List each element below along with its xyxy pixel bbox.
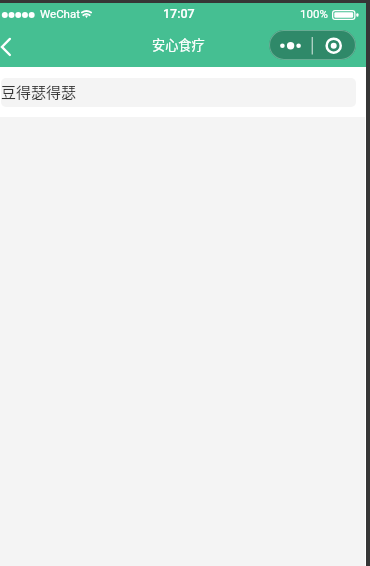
button[interactable]: Back <box>0 26 26 64</box>
button[interactable]: Close mini program <box>312 30 356 60</box>
staticText: WeChat <box>40 7 80 20</box>
button[interactable]: More options <box>269 30 312 60</box>
staticText: 安心食疗 <box>152 35 205 54</box>
staticText: 100% <box>300 7 328 20</box>
button[interactable]: 豆得瑟得瑟 <box>1 78 356 107</box>
staticText: 17:07 <box>163 6 195 21</box>
staticText: 豆得瑟得瑟 <box>1 81 77 103</box>
